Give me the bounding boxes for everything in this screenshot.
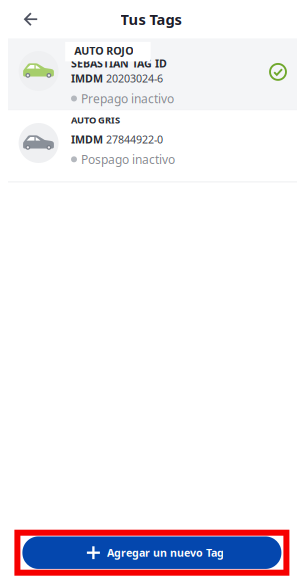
staticText: Tus Tags [120, 9, 181, 29]
staticText: IMDM [71, 132, 106, 146]
staticText: 27844922-0 [106, 132, 163, 146]
button[interactable]: Back [12, 2, 50, 36]
staticText: Prepago inactivo [81, 90, 174, 106]
staticText: AUTO GRIS [71, 114, 120, 126]
button[interactable]: Agregar un nuevo Tag [22, 536, 281, 569]
staticText: SEBASTIAN TAG ID [71, 56, 167, 70]
staticText: Agregar un nuevo Tag [107, 546, 224, 560]
staticText: IMDM [71, 71, 106, 86]
staticText: 20203024-6 [106, 71, 163, 86]
button[interactable]: AUTO GRIS [8, 110, 297, 181]
staticText: Pospago inactivo [81, 151, 175, 167]
button[interactable]: AUTO ROJO [8, 38, 297, 109]
staticText: AUTO ROJO [74, 44, 133, 58]
staticText: AUTO ROJO [71, 42, 121, 54]
